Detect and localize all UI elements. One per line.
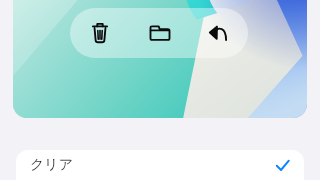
button[interactable]: クリア <box>16 150 304 180</box>
button[interactable]: Move to folder <box>130 8 189 58</box>
staticText: クリア <box>30 156 73 174</box>
button[interactable]: Delete <box>70 8 130 58</box>
button[interactable]: Reply <box>189 8 248 58</box>
